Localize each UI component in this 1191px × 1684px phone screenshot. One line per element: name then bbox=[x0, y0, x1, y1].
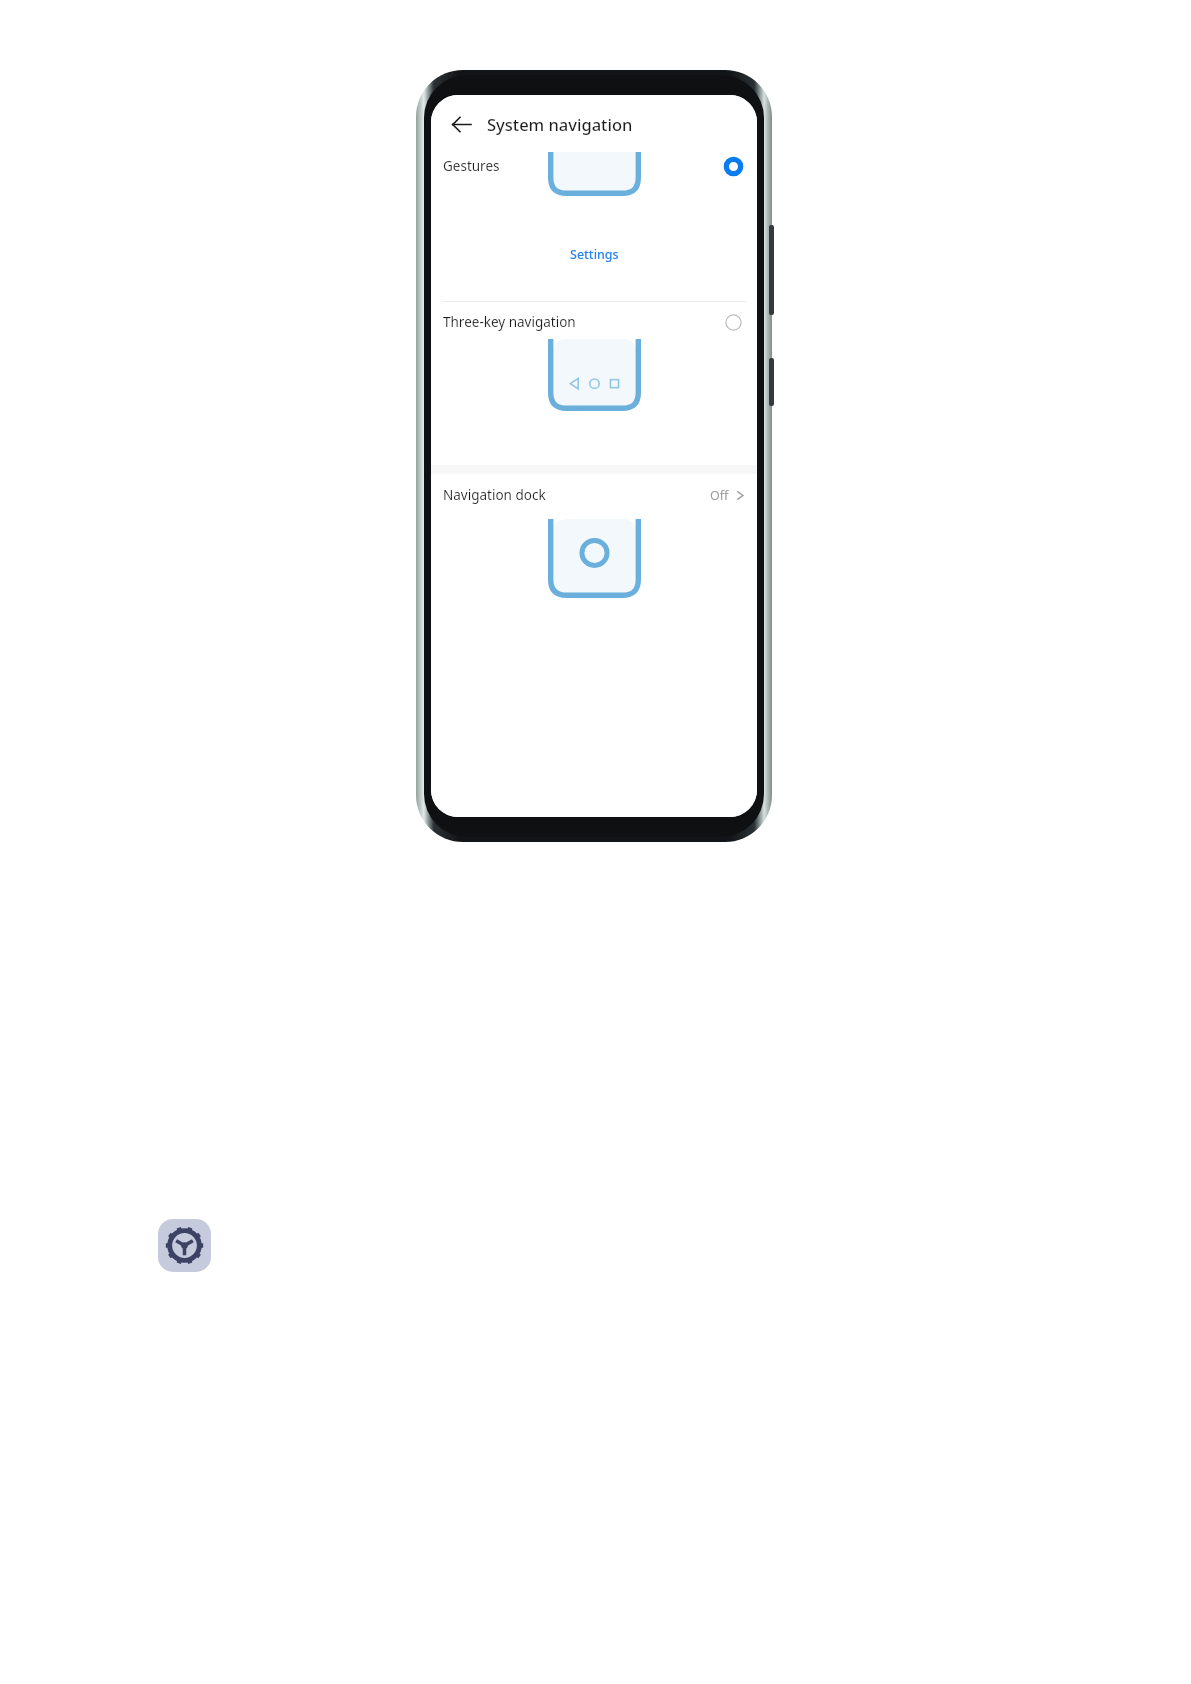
staticText: Three-key navigation bbox=[443, 313, 576, 331]
button[interactable]: Three-key navigation bbox=[431, 302, 757, 465]
staticText: Off bbox=[710, 487, 729, 504]
button[interactable]: Select Gestures bbox=[720, 153, 747, 180]
staticText: Gestures bbox=[443, 157, 500, 175]
button[interactable]: Select Three-key navigation bbox=[720, 309, 747, 336]
button[interactable]: Gestures bbox=[431, 152, 757, 302]
button[interactable]: Back bbox=[444, 107, 478, 141]
button[interactable]: Navigation dock bbox=[431, 474, 757, 624]
staticText: Settings bbox=[570, 246, 619, 263]
staticText: System navigation bbox=[487, 113, 633, 135]
staticText: Navigation dock bbox=[443, 486, 546, 504]
button[interactable]: Settings bbox=[158, 1219, 211, 1272]
button[interactable]: Settings bbox=[554, 242, 635, 267]
